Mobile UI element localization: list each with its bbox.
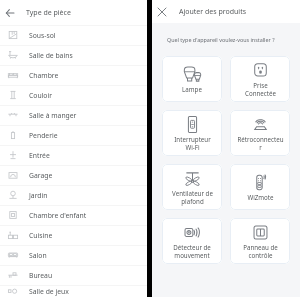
staticText: Prise [253, 81, 268, 89]
staticText: Ventilateur de [172, 189, 213, 197]
button[interactable]: Close [155, 0, 169, 23]
staticText: Garage [29, 171, 53, 180]
staticText: r [259, 143, 262, 151]
button[interactable]: Rétroconnecteu [230, 110, 290, 156]
button[interactable]: Penderie [0, 125, 147, 145]
button[interactable]: Couloir [0, 85, 147, 105]
staticText: Connectée [245, 89, 276, 97]
staticText: Salle à manger [29, 111, 77, 120]
staticText: Salle de jeux [29, 287, 69, 296]
button[interactable]: Garage [0, 165, 147, 185]
staticText: contrôle [248, 251, 273, 259]
button[interactable]: Prise [230, 56, 290, 102]
button[interactable]: Salle à manger [0, 105, 147, 125]
staticText: Chambre d'enfant [29, 211, 87, 220]
button[interactable]: Jardin [0, 185, 147, 205]
button[interactable]: Salle de jeux [0, 285, 147, 297]
staticText: Lampe [182, 85, 202, 93]
staticText: Penderie [29, 131, 58, 140]
button[interactable]: Sous-sol [0, 25, 147, 45]
staticText: Ajouter des produits [179, 7, 247, 17]
button[interactable]: Détecteur de [162, 218, 222, 264]
staticText: Quel type d'appareil voulez-vous install… [167, 36, 275, 43]
button[interactable]: Salle de bains [0, 45, 147, 65]
staticText: plafond [181, 197, 204, 205]
staticText: Interrupteur [174, 135, 211, 143]
staticText: Bureau [29, 271, 53, 280]
staticText: Rétroconnecteu [237, 135, 284, 143]
staticText: WiZmote [247, 193, 274, 201]
staticText: mouvement [174, 251, 210, 259]
staticText: Salle de bains [29, 51, 73, 60]
staticText: Type de pièce [26, 8, 71, 18]
staticText: Chambre [29, 71, 59, 80]
staticText: Sous-sol [29, 31, 56, 40]
staticText: Salon [29, 251, 47, 260]
staticText: Jardin [29, 191, 48, 200]
staticText: Couloir [29, 91, 53, 100]
button[interactable]: Chambre [0, 65, 147, 85]
button[interactable]: Ventilateur de [162, 164, 222, 210]
button[interactable]: Bureau [0, 265, 147, 285]
button[interactable]: WiZmote [230, 164, 290, 210]
button[interactable]: Chambre d'enfant [0, 205, 147, 225]
button[interactable]: Back [0, 0, 19, 25]
button[interactable]: Interrupteur [162, 110, 222, 156]
staticText: Entrée [29, 151, 50, 160]
button[interactable]: Entrée [0, 145, 147, 165]
staticText: Cuisine [29, 231, 53, 240]
button[interactable]: Salon [0, 245, 147, 265]
button[interactable]: Panneau de [230, 218, 290, 264]
staticText: Panneau de [243, 243, 278, 251]
staticText: Wi-Fi [185, 143, 200, 151]
button[interactable]: Lampe [162, 56, 222, 102]
staticText: Détecteur de [173, 243, 211, 251]
button[interactable]: Cuisine [0, 225, 147, 245]
